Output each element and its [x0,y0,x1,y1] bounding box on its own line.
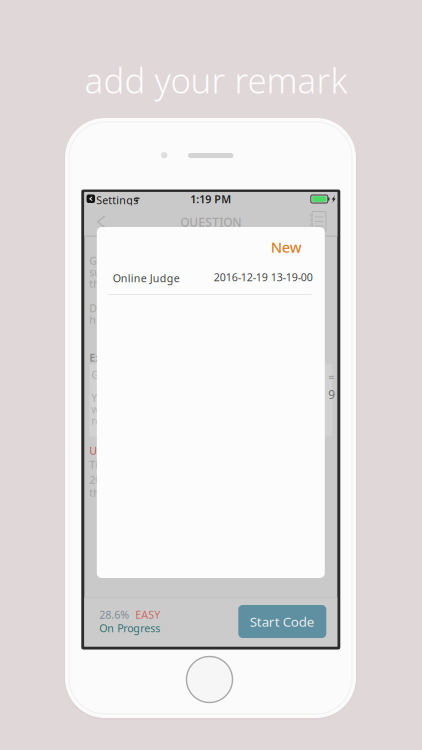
button[interactable]: Back to Settings [86,194,95,203]
staticText: Your function should return length = 2, [91,390,291,405]
staticText: such that each element appear only once [89,265,299,279]
staticText: the new signature instead. [89,485,226,500]
staticText: Do not allocate extra space for another [89,301,286,315]
staticText: the new length. [89,276,170,291]
button[interactable]: Back [86,206,116,237]
staticText: with the first two elements being 1, 2 [91,402,280,416]
staticText: Settings [96,193,138,207]
staticText: Update(2016-12-19): [89,443,190,458]
staticText: Start Code [250,613,315,630]
staticText: 9 [328,386,335,402]
staticText: Example: [89,350,136,365]
staticText: add your remark [84,57,347,103]
staticText: EASY [135,607,160,622]
staticText: The signature of the function had been [89,457,291,472]
staticText: New [271,237,302,257]
staticText: 2016-12-19 updated to not assume the [89,472,285,487]
staticText: On Progress [99,621,160,635]
staticText: 28.6% [99,607,129,622]
staticText: Given nums = [1,1,2], [91,367,199,382]
button[interactable]: Start Code [238,605,326,638]
staticText: QUESTION [180,214,241,230]
staticText: respectively. [91,413,153,428]
staticText: 1:19 PM [190,192,231,206]
staticText: Given a sorted array, remove the duplica… [89,253,309,268]
staticText: have to do this by modifying the input [89,312,284,327]
button[interactable]: New [248,236,302,258]
button[interactable]: Notes [301,206,331,237]
staticText: Online Judge [113,271,180,285]
staticText: = [328,369,334,384]
staticText: 2016-12-19 13-19-00 [214,270,313,284]
